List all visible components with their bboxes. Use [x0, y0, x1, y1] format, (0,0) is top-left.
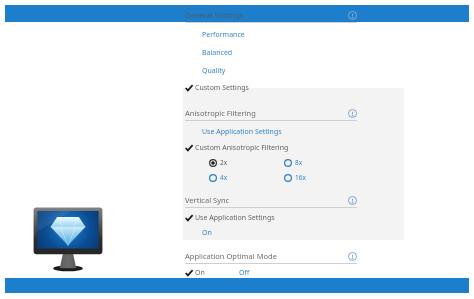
- staticText: Balanced: [202, 48, 233, 58]
- staticText: Custom Settings: [195, 83, 249, 93]
- staticText: Custom Anisotropic Filtering: [195, 143, 289, 153]
- staticText: 16x: [295, 173, 306, 182]
- button[interactable]: On: [185, 268, 357, 278]
- button[interactable]: Custom Anisotropic Filtering: [185, 143, 357, 153]
- staticText: Vertical Sync: [185, 195, 230, 205]
- button[interactable]: Help: [348, 11, 357, 20]
- staticText: Off: [239, 268, 250, 278]
- staticText: Anisotropic Filtering: [185, 108, 256, 118]
- button[interactable]: Balanced: [202, 48, 233, 58]
- button[interactable]: Quality: [202, 66, 226, 76]
- button[interactable]: Custom Settings: [185, 83, 357, 93]
- staticText: On: [202, 228, 212, 238]
- staticText: Application Optimal Mode: [185, 251, 277, 261]
- button[interactable]: Help: [348, 252, 357, 261]
- button[interactable]: 16x: [284, 173, 306, 182]
- staticText: Use Application Settings: [202, 127, 282, 137]
- button[interactable]: 8x: [284, 158, 303, 167]
- button[interactable]: Use Application Settings: [185, 213, 357, 223]
- staticText: General Settings: [185, 10, 244, 20]
- button[interactable]: Performance: [202, 30, 245, 40]
- button[interactable]: Off: [239, 268, 250, 278]
- staticText: Performance: [202, 30, 245, 40]
- button[interactable]: Use Application Settings: [202, 127, 282, 137]
- staticText: 4x: [220, 173, 228, 182]
- staticText: Use Application Settings: [195, 213, 275, 223]
- button[interactable]: 4x: [209, 173, 284, 182]
- staticText: Quality: [202, 66, 226, 76]
- staticText: 2x: [220, 158, 228, 167]
- button[interactable]: Help: [348, 196, 357, 205]
- button[interactable]: 2x: [209, 158, 284, 167]
- button[interactable]: Help: [348, 109, 357, 118]
- staticText: On: [195, 268, 205, 278]
- button[interactable]: On: [202, 228, 212, 238]
- staticText: 8x: [295, 158, 303, 167]
